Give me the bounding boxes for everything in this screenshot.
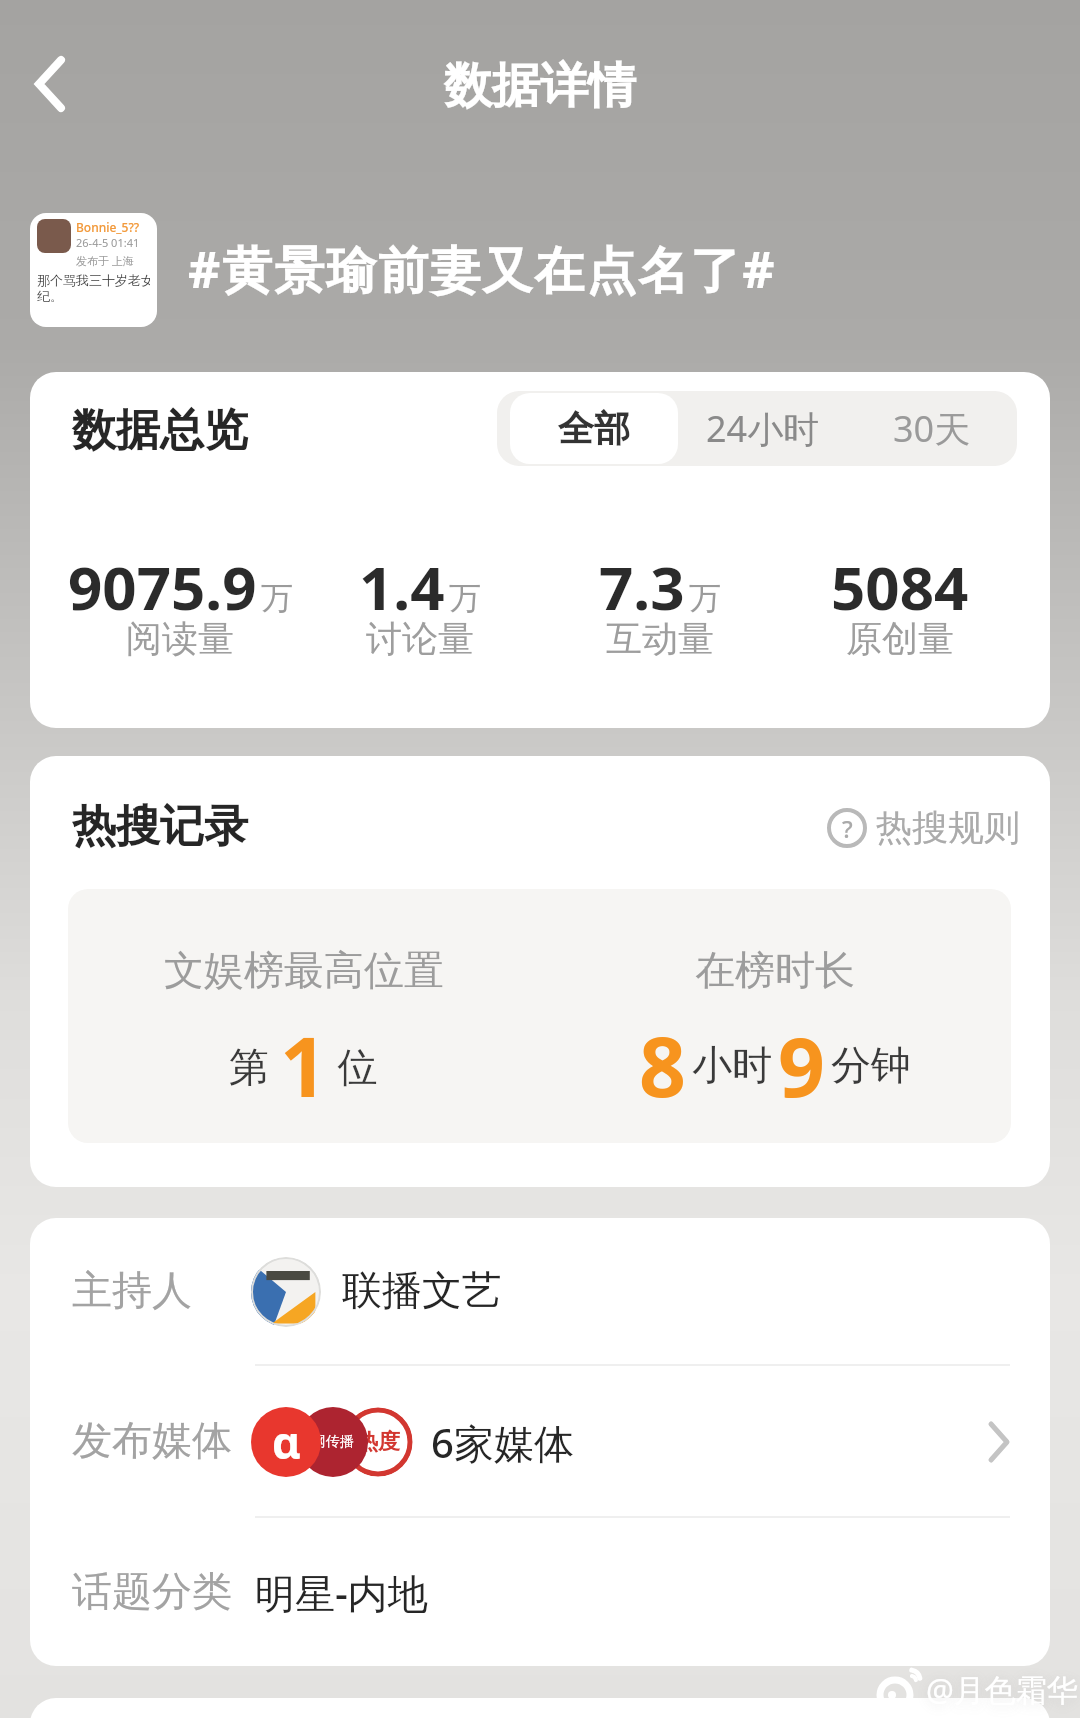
staticText: 9075.9 [68,546,257,628]
button[interactable]: 24小时 [678,391,848,466]
staticText: α [272,1412,301,1472]
staticText: 数据总览 [72,403,248,458]
staticText: 联播文艺 [342,1265,502,1315]
staticText: 5084 [831,546,969,628]
staticText: 原创量 [846,616,954,661]
staticText: 热搜记录 [72,799,248,854]
staticText: 发布媒体 [72,1415,232,1465]
button[interactable]: Bonnie_5?? [30,213,157,327]
button[interactable] [30,1398,1050,1488]
staticText: @月色霜华 [926,1668,1078,1710]
staticText: 7.3 [599,546,685,628]
staticText: 位 [327,1038,378,1093]
staticText: 数据详情 [444,56,636,116]
staticText: 文娱榜最高位置 [164,945,444,995]
staticText: 互动量 [606,616,714,661]
staticText: 那个骂我三十岁老女 [37,272,150,288]
staticText: 纪。 [37,288,63,304]
staticText: 小时 [692,1040,772,1090]
staticText: 1 [280,1009,327,1121]
staticText: ? [842,812,853,845]
staticText: 6家媒体 [431,1415,574,1470]
staticText: 8 [639,1009,686,1121]
button[interactable] [20,44,80,124]
staticText: 1.4 [359,546,445,628]
button[interactable]: 全部 [510,393,678,464]
staticText: 网传播 [312,1433,354,1451]
staticText: 发布于 上海 [76,253,134,268]
staticText: 万 [449,578,481,618]
staticText: 万 [689,578,721,618]
staticText: #黄景瑜前妻又在点名了# [188,235,777,303]
staticText: 分钟 [831,1040,911,1090]
staticText: 热搜规则 [876,805,1020,850]
staticText: 阅读量 [126,616,234,661]
staticText: 热度 [356,1428,400,1456]
staticText: Bonnie_5?? [76,219,140,235]
staticText: 讨论量 [366,616,474,661]
staticText: 全部 [558,406,630,451]
staticText: 万 [261,578,293,618]
staticText: 第 [229,1038,280,1093]
staticText: 在榜时长 [695,945,855,995]
staticText: 话题分类 [72,1566,232,1616]
button[interactable]: 30天 [848,391,1016,466]
staticText: 30天 [893,404,971,453]
staticText: 26-4-5 01:41 [76,235,140,250]
staticText: 24小时 [706,404,820,453]
button[interactable]: ? [826,805,1020,850]
staticText: 主持人 [72,1265,192,1315]
staticText: 9 [778,1009,825,1121]
staticText: 明星-内地 [255,1565,428,1620]
